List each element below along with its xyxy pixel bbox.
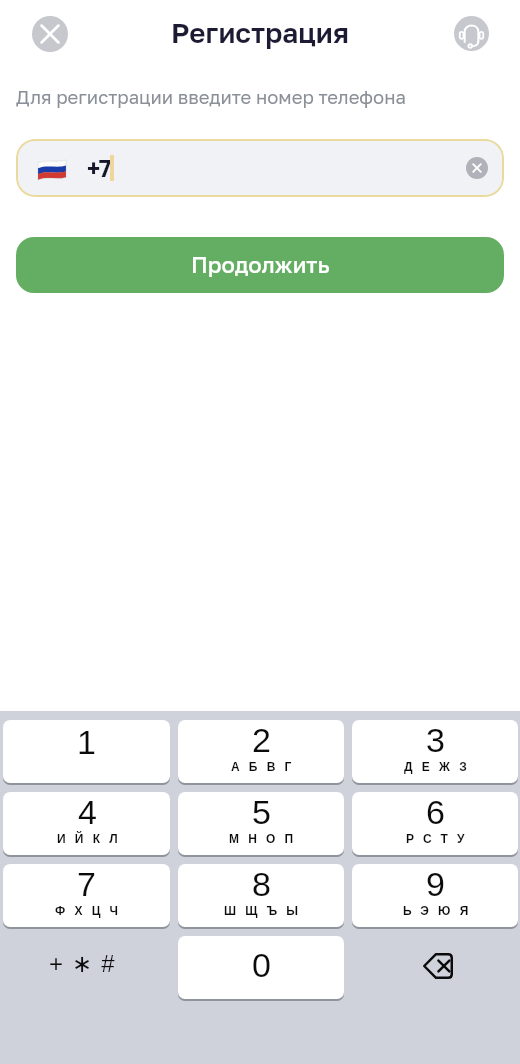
button[interactable]: 5 — [178, 792, 344, 855]
button[interactable]: 6 — [352, 792, 518, 855]
button[interactable]: Продолжить — [16, 237, 504, 293]
staticText: 8 — [252, 865, 271, 903]
staticText: 9 — [426, 865, 445, 903]
staticText: 6 — [426, 793, 445, 831]
staticText: Продолжить — [191, 251, 330, 278]
button[interactable]: 4 — [3, 792, 170, 855]
button[interactable]: Close — [32, 16, 68, 52]
staticText: Регистрация — [171, 16, 349, 49]
button[interactable]: 1 — [3, 720, 170, 783]
staticText: 0 — [252, 946, 271, 984]
button[interactable]: 8 — [178, 864, 344, 927]
staticText: ДЕЖЗ — [404, 760, 476, 773]
staticText: 3 — [426, 721, 445, 759]
staticText: ШЩЪЫ — [224, 904, 308, 917]
staticText: МНОП — [229, 832, 303, 845]
staticText: ФХЦЧ — [55, 904, 128, 917]
staticText: ИЙКЛ — [57, 832, 127, 845]
staticText: 1 — [77, 723, 96, 761]
staticText: +7 — [87, 154, 112, 182]
button[interactable]: 3 — [352, 720, 518, 783]
button[interactable]: +∗# — [3, 936, 170, 999]
button[interactable]: Support — [454, 16, 489, 51]
button[interactable]: 7 — [3, 864, 170, 927]
staticText: ЬЭЮЯ — [403, 904, 478, 917]
button[interactable]: 9 — [352, 864, 518, 927]
staticText: 7 — [77, 865, 96, 903]
staticText: АБВГ — [231, 760, 301, 773]
staticText: +∗# — [49, 950, 124, 978]
staticText: 4 — [78, 793, 97, 831]
staticText: 2 — [252, 721, 271, 759]
button[interactable]: 0 — [178, 936, 344, 999]
button[interactable]: Clear — [466, 157, 488, 179]
button[interactable]: +7 — [16, 139, 504, 197]
staticText: Для регистрации введите номер телефона — [16, 86, 406, 108]
button[interactable]: Backspace — [352, 936, 518, 999]
staticText: 5 — [252, 793, 271, 831]
button[interactable]: 2 — [178, 720, 344, 783]
staticText: РСТУ — [406, 832, 474, 845]
